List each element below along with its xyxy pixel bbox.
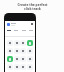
button[interactable]: App logo <box>7 23 10 26</box>
button[interactable]: Item <box>7 48 13 54</box>
button[interactable]: Item <box>14 40 20 46</box>
button[interactable]: Item <box>14 48 20 54</box>
button[interactable]: Item <box>27 64 33 70</box>
button[interactable]: Item <box>14 64 20 70</box>
button[interactable]: Item <box>20 48 26 54</box>
button[interactable]: Item <box>20 40 26 46</box>
button[interactable]: Item <box>14 56 20 62</box>
button[interactable]: Metronome <box>27 40 33 46</box>
staticText: click track <box>24 6 41 10</box>
staticText: Create the perfect <box>17 2 48 6</box>
button[interactable]: Item <box>7 40 13 46</box>
button[interactable]: Metronome <box>7 56 13 62</box>
button[interactable]: Item <box>27 48 33 54</box>
button[interactable]: Item <box>27 56 33 62</box>
button[interactable]: Item <box>20 64 26 70</box>
button[interactable]: Item <box>7 64 13 70</box>
button[interactable]: Item <box>20 56 26 62</box>
